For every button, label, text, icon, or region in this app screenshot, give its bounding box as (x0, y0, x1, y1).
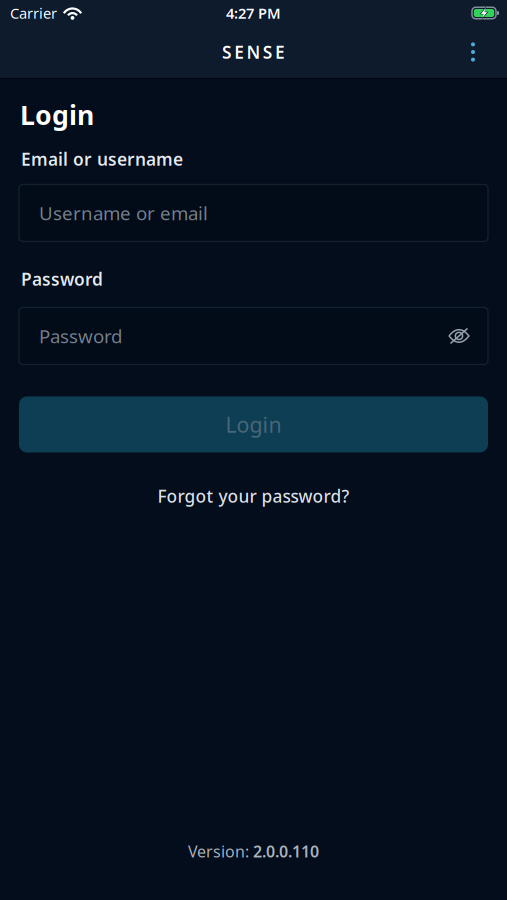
button[interactable]: Username or email (19, 184, 488, 241)
button[interactable] (446, 323, 472, 349)
staticText: E (234, 40, 244, 63)
staticText: Login (225, 410, 281, 439)
staticText: Password (21, 267, 103, 290)
staticText: N (246, 40, 260, 63)
staticText: E (275, 40, 285, 63)
button[interactable] (458, 30, 488, 74)
button[interactable]: Login (19, 396, 488, 452)
staticText: S (222, 40, 232, 63)
staticText: Carrier (10, 3, 57, 23)
staticText: 4:27 PM (226, 3, 281, 23)
staticText: Email or username (21, 147, 183, 170)
staticText: Login (20, 97, 94, 132)
staticText: 2.0.0.110 (253, 841, 319, 862)
staticText: Forgot your password? (157, 484, 349, 507)
staticText: Username or email (39, 200, 208, 225)
staticText: Password (39, 324, 122, 348)
staticText: S (263, 40, 273, 63)
button[interactable]: Password (19, 307, 488, 364)
button[interactable]: Forgot your password? (157, 484, 349, 507)
staticText: Version: (188, 841, 253, 862)
